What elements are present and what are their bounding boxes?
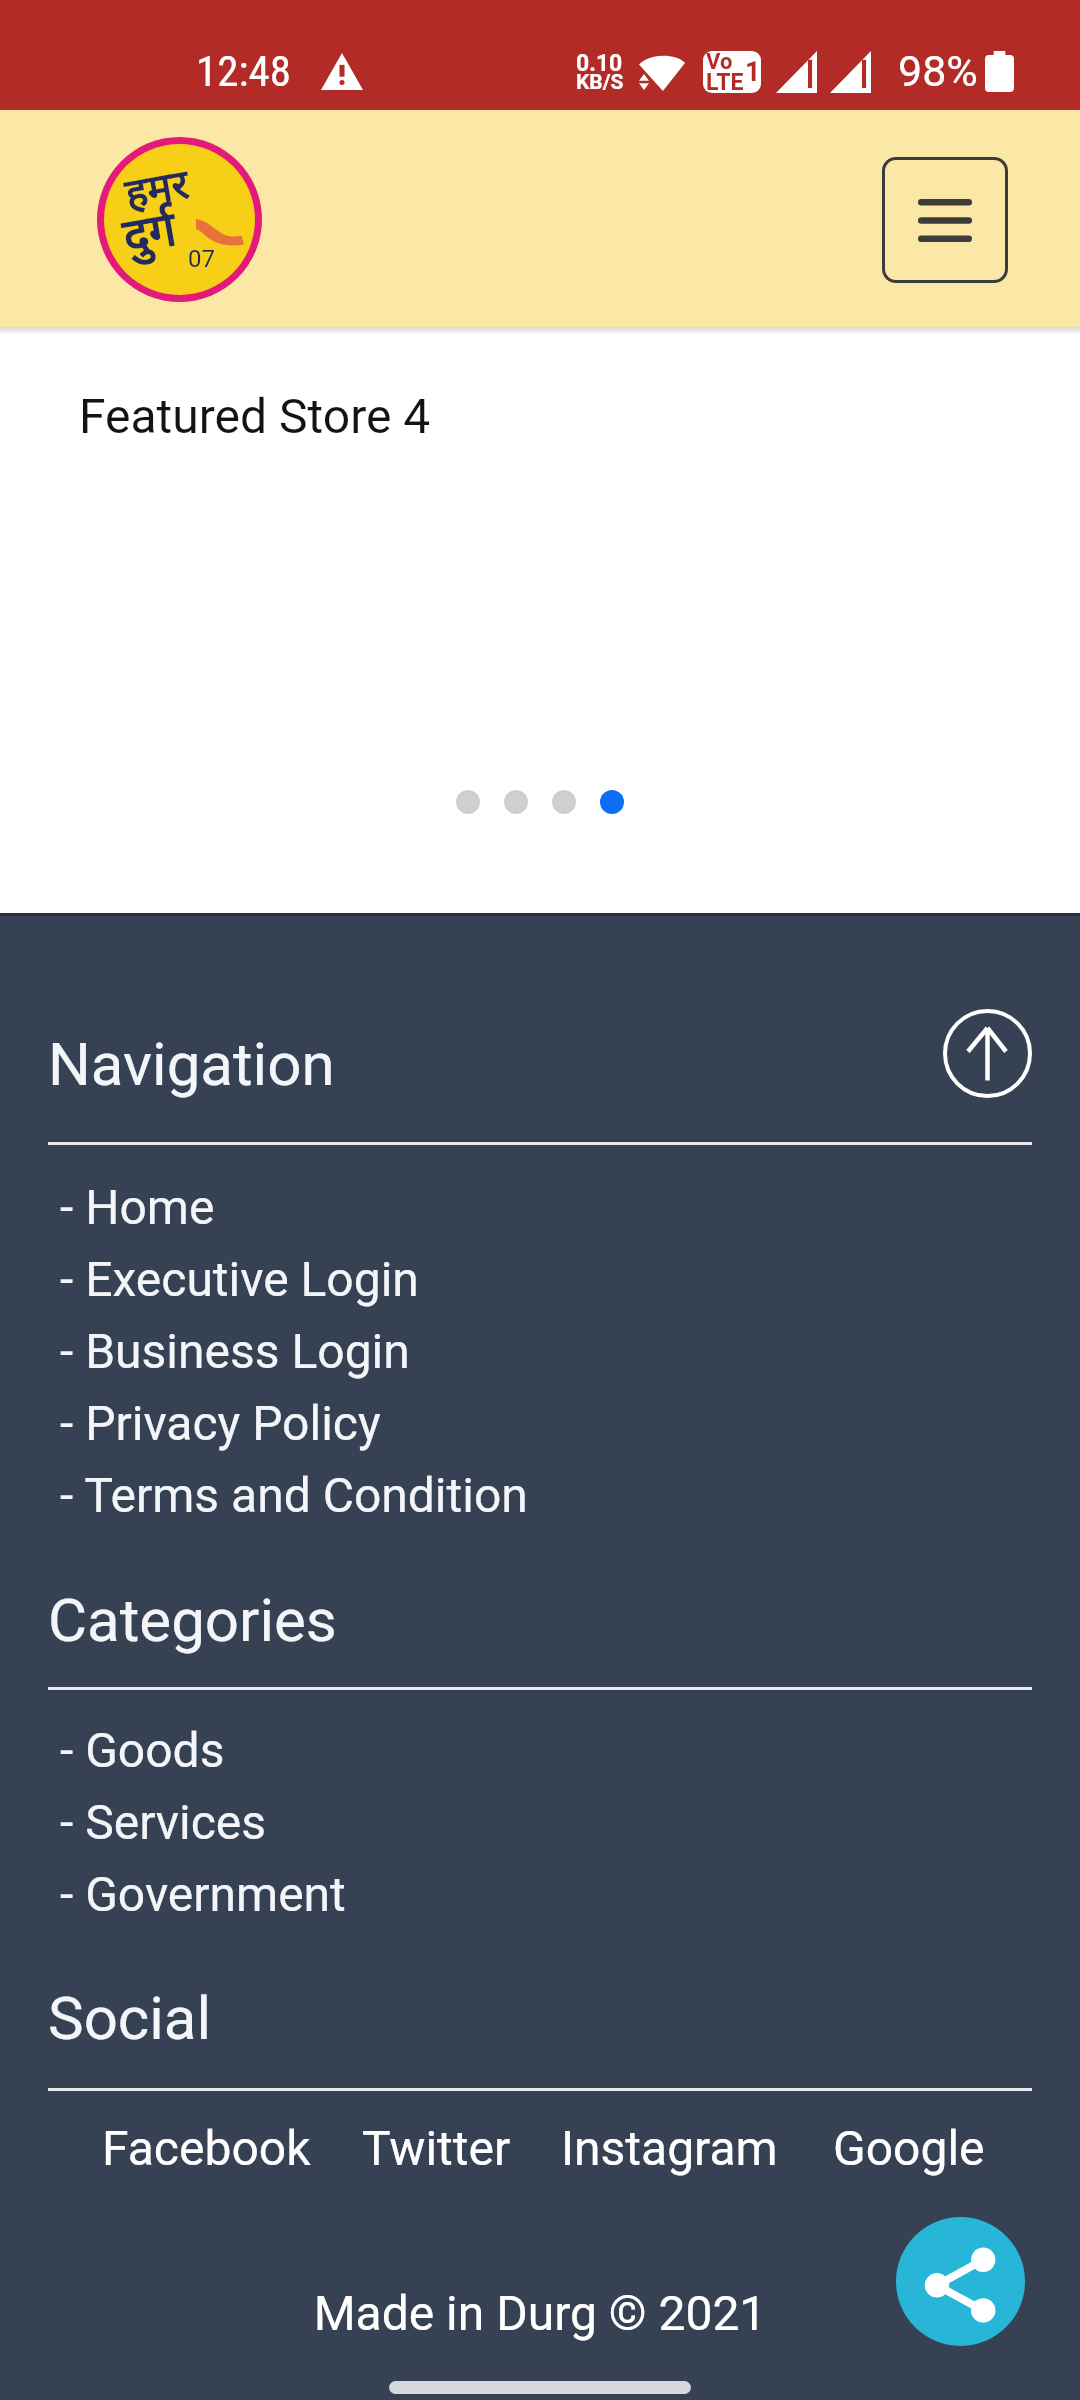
button[interactable]: Twitter [362,2120,511,2176]
staticText: - Government [60,1866,346,1922]
staticText: हमर [122,161,194,224]
staticText: Vo [706,51,733,75]
staticText: Navigation [48,1029,335,1099]
button[interactable]: Navigation [48,1029,335,1099]
staticText: - Business Login [60,1323,410,1379]
staticText: 0.10 [576,50,623,77]
button[interactable]: Scroll to top [943,1009,1032,1098]
staticText: 12:48 [196,46,291,96]
staticText: - Goods [60,1722,225,1778]
staticText: Categories [48,1585,337,1655]
staticText: - Terms and Condition [60,1467,528,1523]
staticText: 07 [188,245,215,273]
button[interactable]: Categories [48,1585,337,1655]
staticText: - Privacy Policy [60,1395,381,1451]
staticText: दुर्ग [119,202,182,273]
staticText: Twitter [362,2120,511,2176]
staticText: Instagram [561,2120,778,2176]
staticText: - Executive Login [60,1251,419,1307]
button[interactable]: Share [896,2217,1025,2346]
button[interactable]: - Terms and Condition [60,1467,528,1523]
staticText: - Home [60,1179,215,1235]
button[interactable]: Google [833,2120,985,2176]
staticText: - Services [60,1794,267,1850]
button[interactable]: Facebook [102,2120,311,2176]
button[interactable]: - Services [60,1794,267,1850]
staticText: Facebook [102,2120,311,2176]
button[interactable]: - Executive Login [60,1251,419,1307]
button[interactable]: Open menu [882,157,1008,283]
staticText: Social [48,1983,212,2053]
staticText: Google [833,2120,985,2176]
button[interactable]: Social [48,1983,212,2053]
button[interactable]: - Goods [60,1722,225,1778]
staticText: LTE [706,69,744,93]
button[interactable]: - Government [60,1866,346,1922]
staticText: KB/S [576,70,624,95]
staticText: 98% [898,46,978,96]
staticText: 1 [745,56,761,88]
staticText: Made in Durg © 2021 [0,2285,1080,2341]
button[interactable]: Hamar Durg home [97,137,262,302]
button[interactable]: Instagram [561,2120,778,2176]
staticText: Featured Store 4 [79,388,431,444]
button[interactable]: - Home [60,1179,215,1235]
button[interactable]: - Business Login [60,1323,410,1379]
button[interactable]: - Privacy Policy [60,1395,381,1451]
